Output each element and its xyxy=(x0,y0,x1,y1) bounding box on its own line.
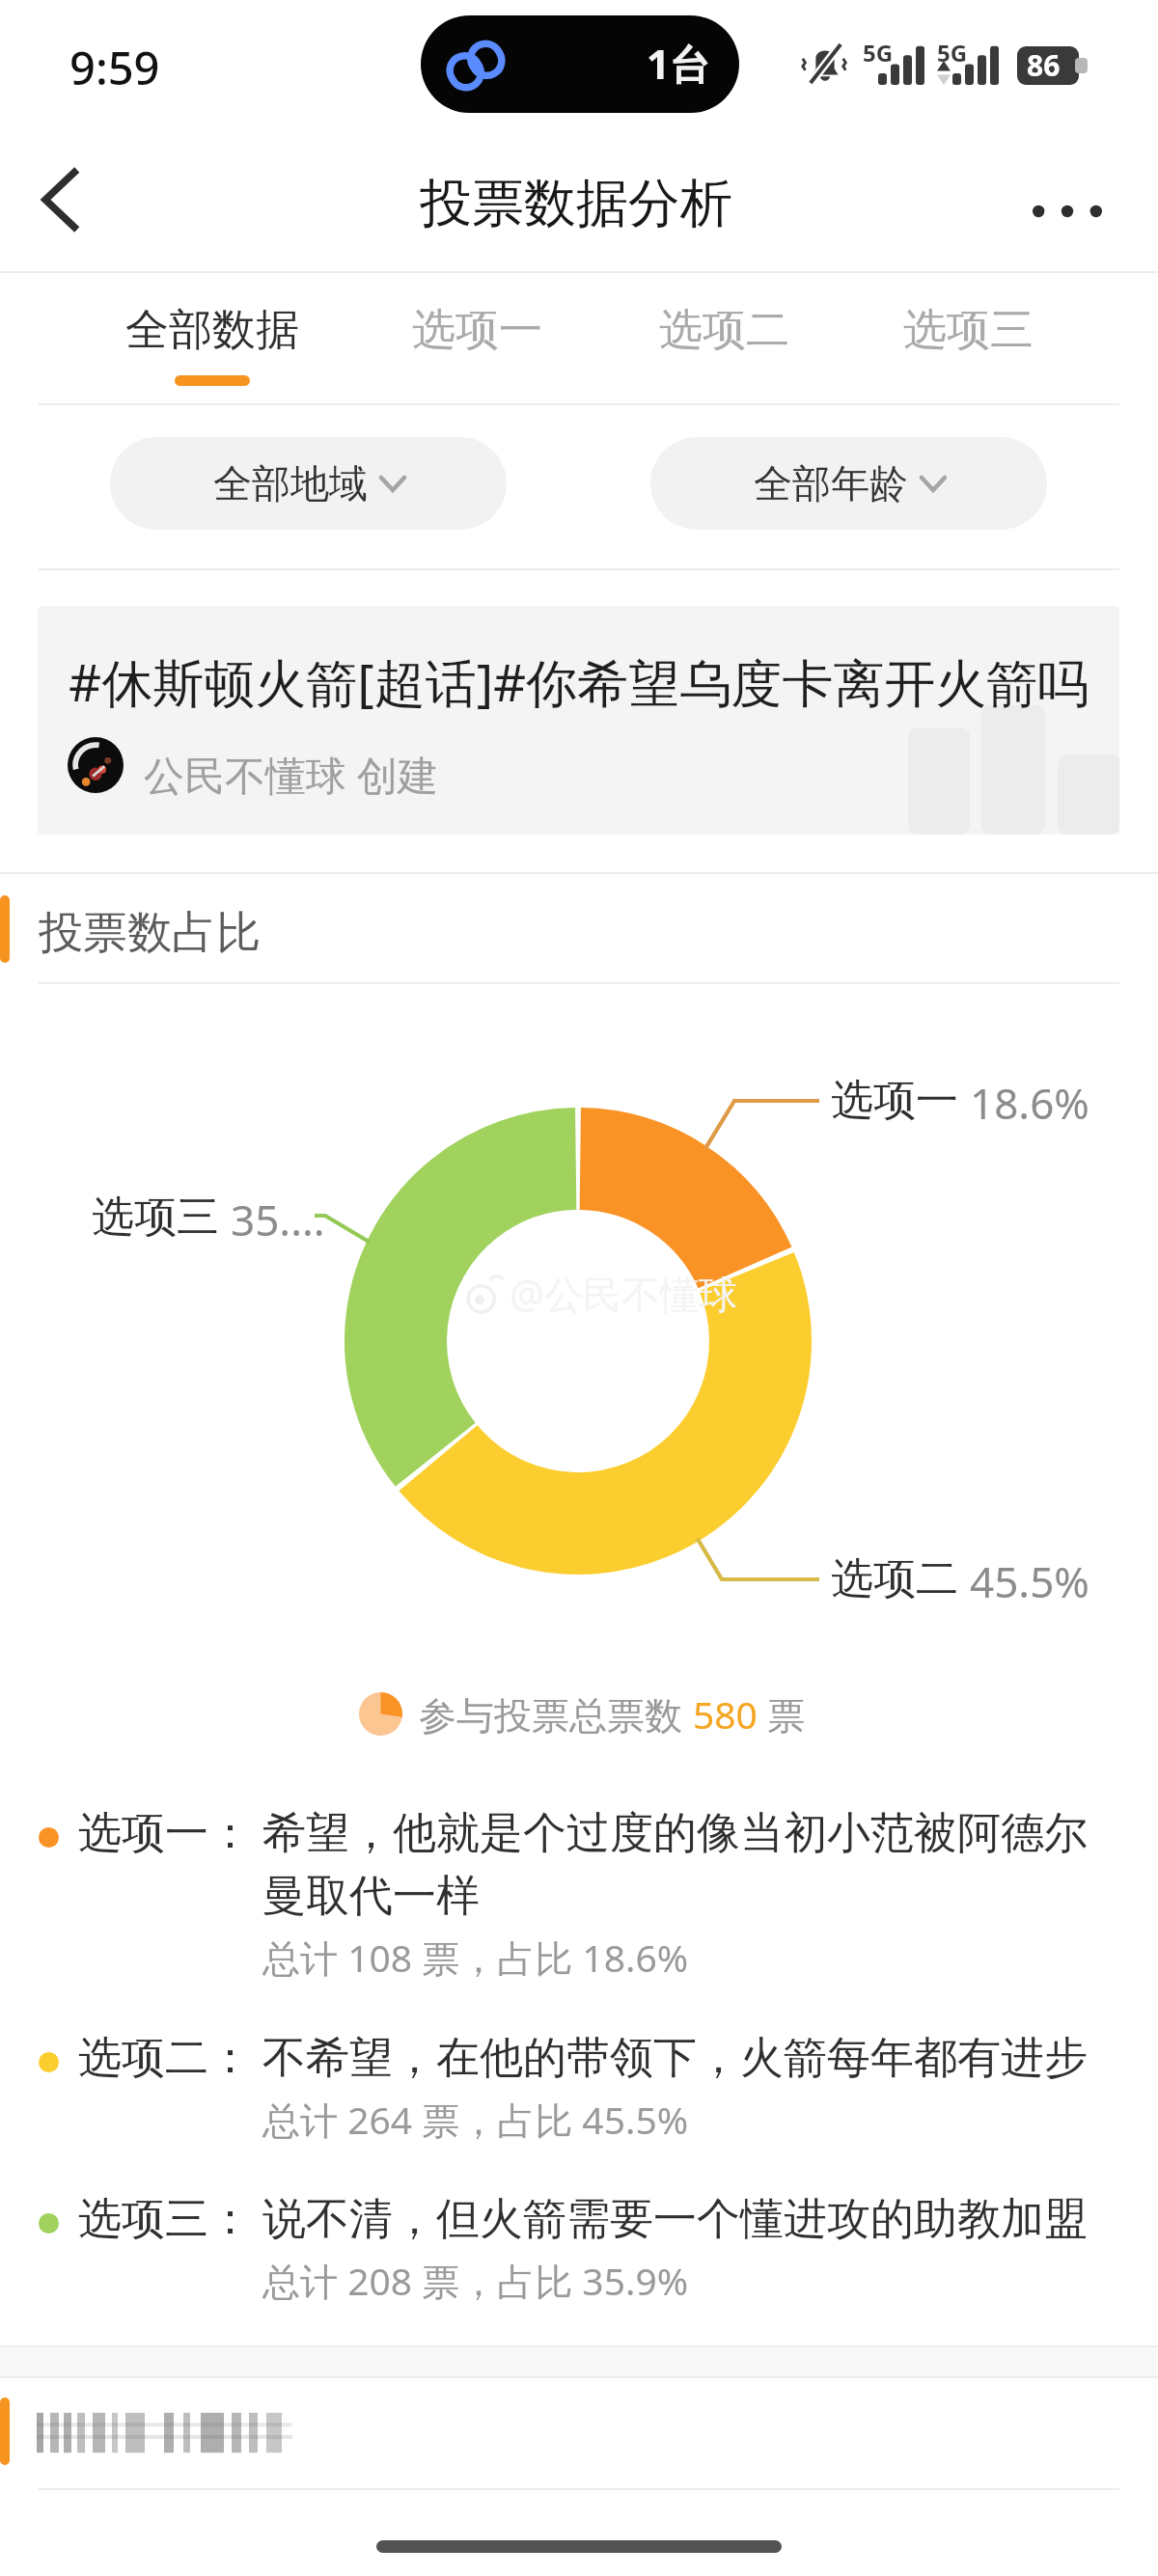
staticText: 说不清，但火箭需要一个懂进攻的助教加盟 xyxy=(262,2192,1110,2247)
staticText: 5G xyxy=(937,37,968,69)
staticText: #休斯顿火箭[超话]#你希望乌度卡离开火箭吗 xyxy=(69,646,1089,716)
staticText: 投票数占比 xyxy=(39,905,261,961)
staticText: 参与投票总票数 xyxy=(419,1688,693,1740)
staticText: 选项三 xyxy=(92,1191,219,1244)
staticText: 选项一 xyxy=(412,303,542,358)
button[interactable]: #休斯顿火箭[超话]#你希望乌度卡离开火箭吗 xyxy=(38,606,1119,835)
staticText: 选项二 xyxy=(831,1552,958,1605)
staticText: 86 xyxy=(1027,45,1061,84)
button[interactable]: 全部数据 xyxy=(111,273,314,405)
staticText: 总计 264 票，占比 45.5% xyxy=(262,2094,689,2145)
button[interactable]: 选项一： xyxy=(19,1795,1139,1987)
staticText: 公民不懂球 创建 xyxy=(144,747,438,802)
staticText: 1台 xyxy=(647,36,711,91)
staticText: 选项二： xyxy=(78,2031,252,2086)
staticText: 全部地域 xyxy=(213,459,368,507)
staticText: 总计 108 票，占比 18.6% xyxy=(262,1932,689,1983)
staticText: 全部年龄 xyxy=(754,459,908,507)
button[interactable]: 全部地域 xyxy=(110,437,507,530)
staticText: 选项一 xyxy=(831,1074,958,1127)
button[interactable]: 选项二 xyxy=(642,273,806,405)
button[interactable]: Back xyxy=(3,146,119,261)
staticText: 选项三 xyxy=(903,303,1034,358)
staticText: 选项二 xyxy=(659,303,789,358)
staticText: 选项一： xyxy=(78,1806,252,1861)
staticText: 45.5% xyxy=(970,1552,1089,1610)
staticText: 全部数据 xyxy=(125,303,299,358)
staticText: 35.... xyxy=(231,1191,325,1248)
button[interactable]: Connected devices xyxy=(421,15,739,113)
staticText: 不希望，在他的带领下，火箭每年都有进步 xyxy=(262,2031,1110,2086)
staticText: 票 xyxy=(758,1688,806,1740)
button[interactable]: 选项三 xyxy=(886,273,1050,405)
button[interactable]: 全部年龄 xyxy=(650,437,1047,530)
staticText: 5G xyxy=(863,37,894,69)
staticText: 希望，他就是个过度的像当初小范被阿德尔曼取代一样 xyxy=(262,1806,1110,1923)
staticText: 9:59 xyxy=(69,37,160,98)
button[interactable]: 选项三： xyxy=(19,2180,1139,2311)
staticText: 投票数据分析 xyxy=(420,171,732,236)
button[interactable]: 选项二： xyxy=(19,2019,1139,2150)
staticText: @公民不懂球 xyxy=(510,1267,737,1320)
button[interactable]: More options xyxy=(1009,152,1125,268)
staticText: 18.6% xyxy=(970,1074,1089,1132)
staticText: 580 xyxy=(693,1688,758,1740)
staticText: 选项三： xyxy=(78,2192,252,2247)
button[interactable]: 选项一 xyxy=(395,273,559,405)
staticText: 总计 208 票，占比 35.9% xyxy=(262,2255,689,2306)
